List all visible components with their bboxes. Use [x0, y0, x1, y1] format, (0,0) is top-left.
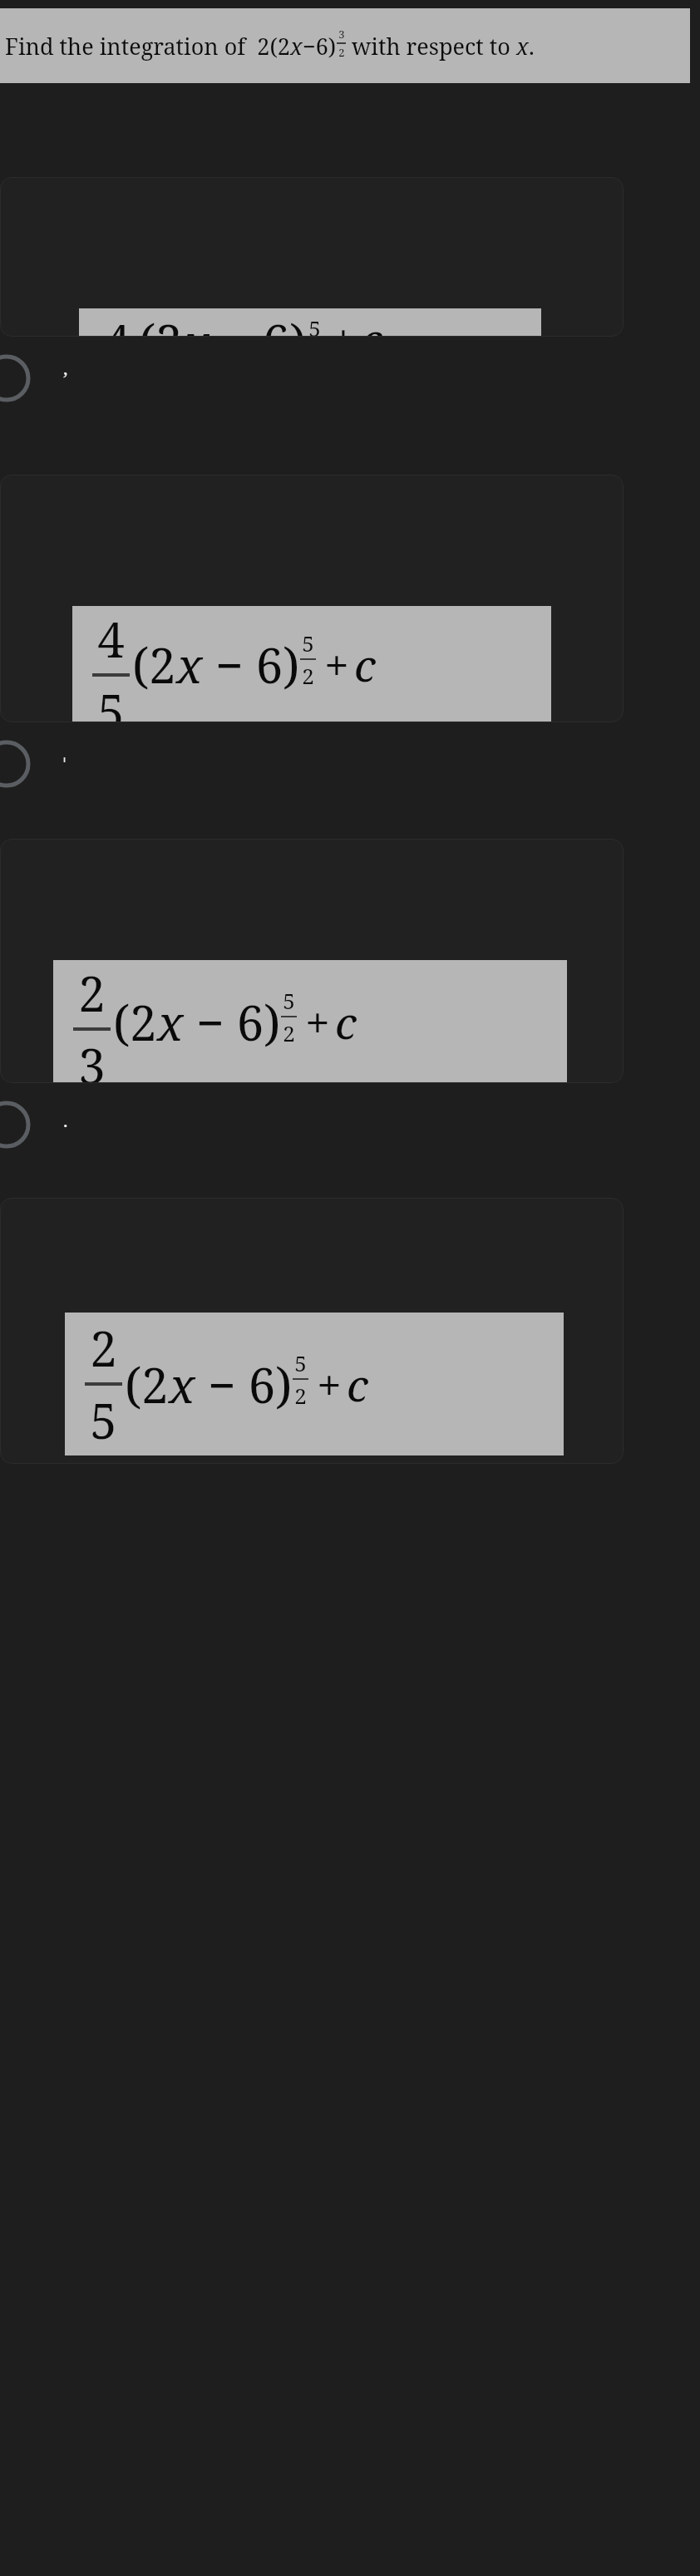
- staticText: ’: [63, 366, 68, 391]
- staticText: 5: [90, 1387, 117, 1453]
- staticText: +: [317, 1354, 342, 1415]
- staticText: − 6): [203, 632, 300, 697]
- staticText: c: [361, 308, 382, 337]
- button[interactable]: Select answer: [0, 337, 700, 420]
- other: Select answer: [0, 739, 32, 789]
- button[interactable]: 4: [0, 177, 624, 337]
- staticText: ˈ: [63, 751, 67, 776]
- staticText: −6): [303, 31, 337, 62]
- staticText: 2: [338, 45, 345, 60]
- staticText: .: [529, 31, 535, 62]
- staticText: 2: [78, 960, 106, 1026]
- other: Select answer: [0, 1100, 32, 1150]
- staticText: (2: [125, 1352, 169, 1417]
- staticText: x: [183, 308, 210, 337]
- staticText: 4: [97, 606, 125, 672]
- staticText: 5: [294, 1348, 307, 1377]
- staticText: − 6): [184, 989, 281, 1055]
- button[interactable]: Select answer: [0, 722, 700, 805]
- button[interactable]: Select answer: [0, 1083, 700, 1166]
- staticText: 2: [283, 1018, 295, 1047]
- button[interactable]: 2: [0, 839, 624, 1083]
- staticText: +: [305, 992, 330, 1052]
- staticText: Find the integration of 2(2: [5, 31, 290, 62]
- staticText: c: [354, 634, 376, 695]
- staticText: x: [157, 989, 184, 1055]
- staticText: (2: [139, 308, 183, 337]
- staticText: x: [176, 632, 203, 697]
- staticText: 4: [104, 308, 131, 337]
- staticText: 5: [302, 628, 314, 658]
- staticText: − 6): [210, 308, 307, 337]
- staticText: x: [516, 31, 529, 62]
- staticText: +: [324, 634, 349, 695]
- staticText: 3: [78, 1032, 106, 1083]
- staticText: 2: [302, 661, 314, 690]
- button[interactable]: 4: [0, 475, 624, 722]
- staticText: 2: [90, 1315, 117, 1381]
- staticText: 2: [294, 1381, 307, 1410]
- staticText: c: [347, 1354, 368, 1415]
- staticText: c: [335, 992, 357, 1052]
- staticText: (2: [132, 632, 176, 697]
- staticText: +: [331, 308, 356, 337]
- staticText: − 6): [195, 1352, 293, 1417]
- staticText: (2: [113, 989, 157, 1055]
- staticText: ·: [63, 1112, 68, 1137]
- staticText: x: [290, 31, 303, 62]
- staticText: 5: [283, 986, 295, 1015]
- staticText: 5: [97, 678, 125, 722]
- staticText: 3: [338, 27, 345, 42]
- staticText: x: [169, 1352, 195, 1417]
- button[interactable]: 2: [0, 1198, 624, 1464]
- staticText: with respect to: [346, 31, 516, 62]
- other: Select answer: [0, 353, 32, 403]
- staticText: 5: [308, 313, 321, 337]
